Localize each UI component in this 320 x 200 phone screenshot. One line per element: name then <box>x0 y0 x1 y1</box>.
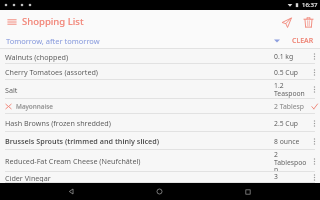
staticText: 16:37 <box>302 1 318 9</box>
button[interactable]: Reduced-Fat Cream Cheese (Neufchâtel) <box>0 150 320 172</box>
button[interactable]: Hash Browns (frozen shredded) <box>0 114 320 132</box>
button[interactable]: Cherry Tomatoes (assorted) <box>0 64 320 80</box>
other: Open navigation menu <box>7 17 17 27</box>
staticText: 3 Tablespoo n <box>274 172 307 183</box>
button[interactable]: More options <box>308 49 320 64</box>
button[interactable]: CLEAR <box>286 33 320 49</box>
button[interactable]: Salt <box>0 80 320 99</box>
button[interactable]: Recent apps <box>231 183 265 200</box>
button[interactable]: Share list <box>275 11 297 33</box>
staticText: Walnuts (chopped) <box>5 52 271 62</box>
staticText: Mayonnaise <box>16 102 271 111</box>
staticText: CLEAR <box>292 36 314 46</box>
button[interactable]: Cider Vinegar <box>0 172 320 183</box>
staticText: Reduced-Fat Cream Cheese (Neufchâtel) <box>5 156 271 166</box>
staticText: Brussels Sprouts (trimmed and thinly sli… <box>5 136 271 146</box>
staticText: Hash Browns (frozen shredded) <box>5 118 271 128</box>
button[interactable]: Tomorrow, after tomorrow <box>0 34 106 48</box>
button[interactable]: Item completed <box>308 99 320 114</box>
staticText: 0.5 Cup <box>274 68 299 77</box>
staticText: 0.1 kg <box>274 52 294 61</box>
button[interactable]: Mayonnaise <box>0 99 320 114</box>
staticText: 2.5 Cup <box>274 119 299 128</box>
button[interactable]: Open navigation menu <box>0 11 90 32</box>
button[interactable]: Back <box>54 183 88 200</box>
staticText: Shopping List <box>22 15 84 28</box>
staticText: Tomorrow, after tomorrow <box>6 36 100 46</box>
staticText: 2 Tablesp <box>274 102 304 111</box>
staticText: Cider Vinegar <box>5 173 271 183</box>
staticText: 2 Tablespoo n <box>274 150 307 172</box>
button[interactable]: More options <box>308 132 320 150</box>
button[interactable]: More options <box>308 80 320 99</box>
button[interactable]: Brussels Sprouts (trimmed and thinly sli… <box>0 132 320 150</box>
staticText: 8 ounce <box>274 137 300 146</box>
staticText: Cherry Tomatoes (assorted) <box>5 67 271 77</box>
button[interactable]: Change date filter <box>268 33 286 49</box>
button[interactable]: More options <box>308 172 320 183</box>
button[interactable]: More options <box>308 150 320 172</box>
button[interactable]: Delete list <box>297 11 319 33</box>
button[interactable]: More options <box>308 64 320 80</box>
button[interactable]: Home <box>142 183 176 200</box>
button[interactable]: More options <box>308 114 320 132</box>
staticText: Salt <box>5 85 271 95</box>
staticText: 1.2 Teaspoon <box>274 81 305 98</box>
button[interactable]: Walnuts (chopped) <box>0 49 320 64</box>
